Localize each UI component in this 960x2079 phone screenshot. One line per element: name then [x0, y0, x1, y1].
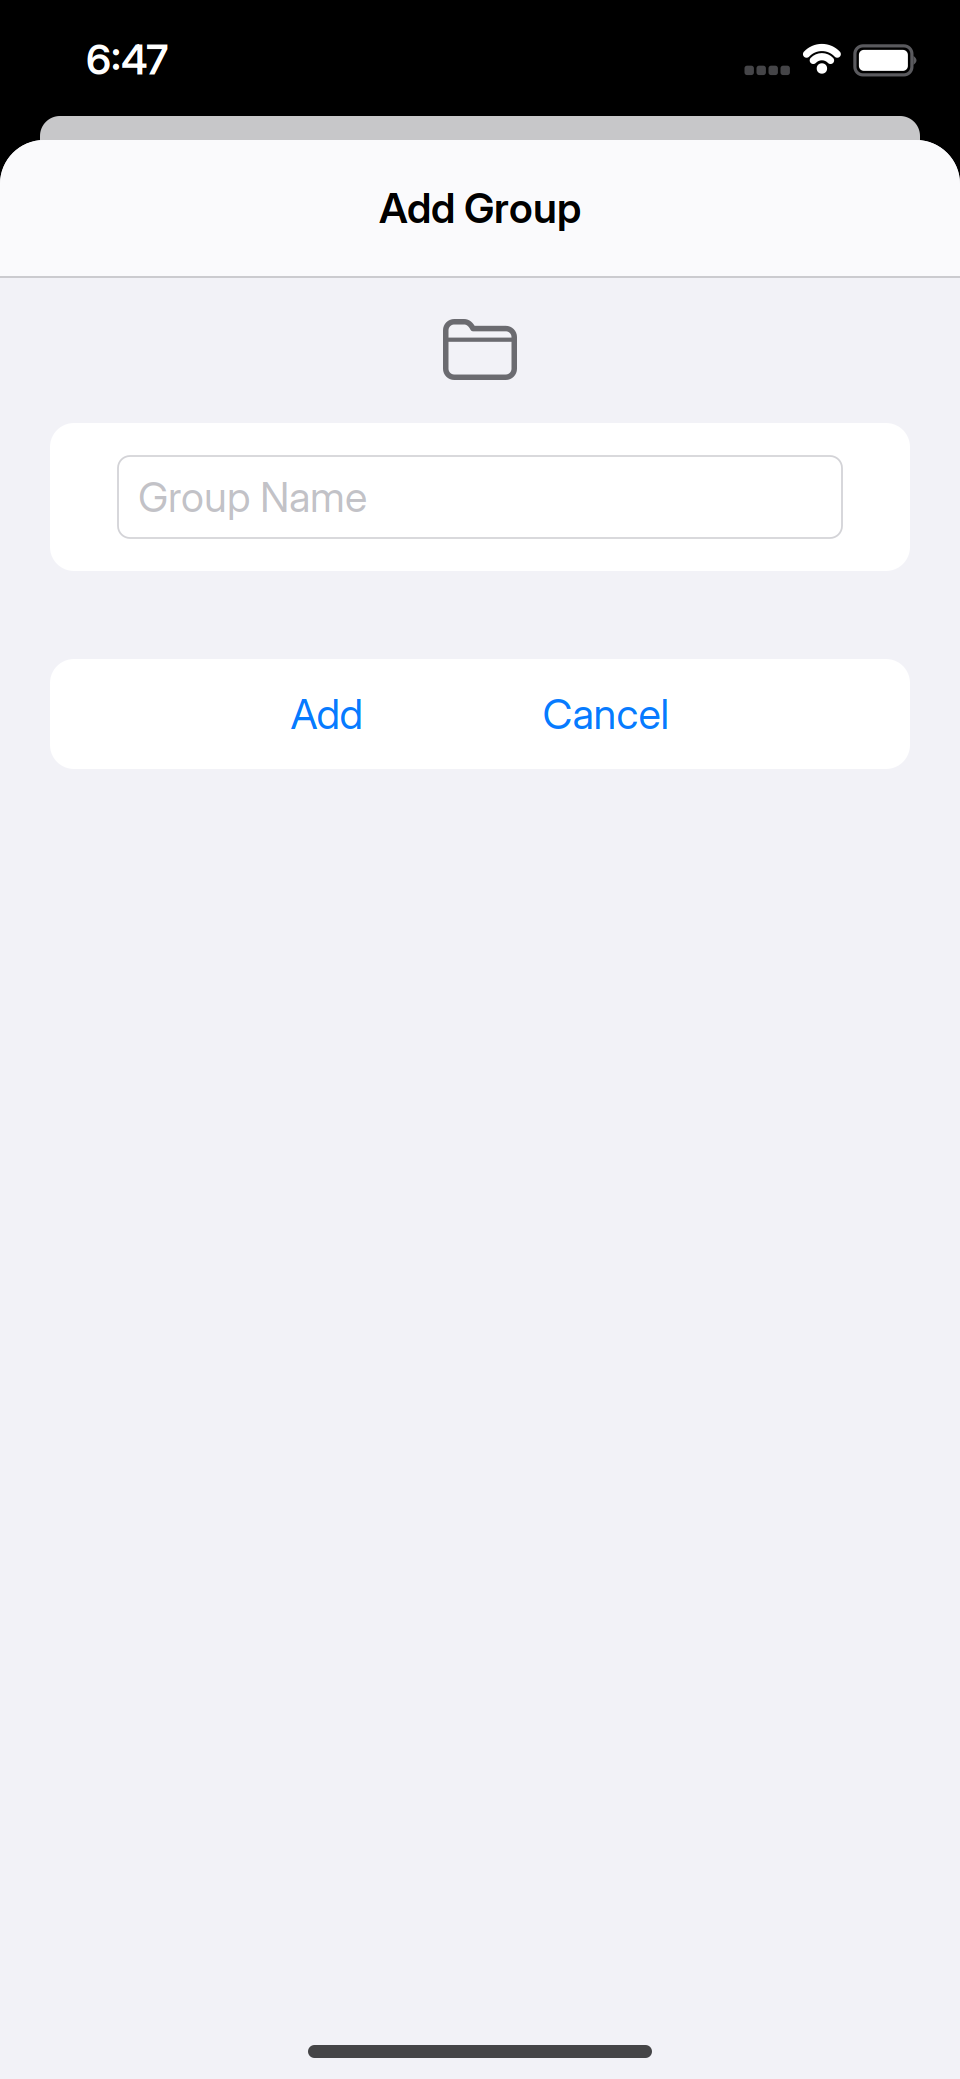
staticText: Add [290, 690, 362, 738]
staticText: Cancel [542, 690, 669, 738]
staticText: Group Name [138, 473, 367, 521]
staticText: Add Group [379, 184, 581, 232]
button[interactable]: Add [260, 665, 392, 763]
button[interactable]: Group Name [118, 456, 842, 538]
staticText: 6:47 [86, 35, 168, 84]
button[interactable]: Cancel [512, 665, 699, 763]
